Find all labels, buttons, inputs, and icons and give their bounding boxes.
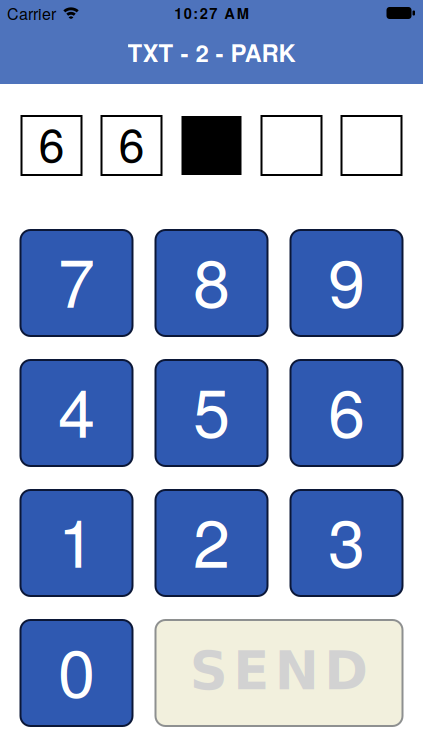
staticText: 10:27 AM — [174, 2, 249, 23]
button[interactable]: 8 — [155, 230, 267, 336]
staticText: 8 — [193, 231, 230, 327]
staticText: 7 — [58, 231, 95, 327]
staticText: 6 — [328, 361, 365, 457]
staticText: 2 — [193, 491, 230, 587]
staticText: 4 — [58, 361, 95, 457]
staticText: 3 — [328, 491, 365, 587]
staticText: TXT - 2 - PARK — [127, 35, 295, 70]
button[interactable]: 7 — [20, 230, 132, 336]
button[interactable]: 2 — [155, 490, 267, 596]
staticText: 9 — [328, 231, 365, 327]
staticText: 0 — [58, 621, 95, 717]
button[interactable]: 1 — [20, 490, 132, 596]
staticText: 1 — [58, 491, 95, 587]
staticText: 6 — [38, 109, 64, 175]
staticText: 6 — [118, 109, 144, 175]
button[interactable]: SEND — [155, 620, 402, 726]
staticText: 5 — [193, 361, 230, 457]
button[interactable]: 4 — [20, 360, 132, 466]
button[interactable]: 0 — [20, 620, 132, 726]
button[interactable]: 9 — [290, 230, 402, 336]
staticText: Carrier — [7, 1, 56, 24]
button[interactable]: 3 — [290, 490, 402, 596]
staticText: SEND — [190, 640, 368, 702]
button[interactable]: 5 — [155, 360, 267, 466]
button[interactable]: 6 — [290, 360, 402, 466]
